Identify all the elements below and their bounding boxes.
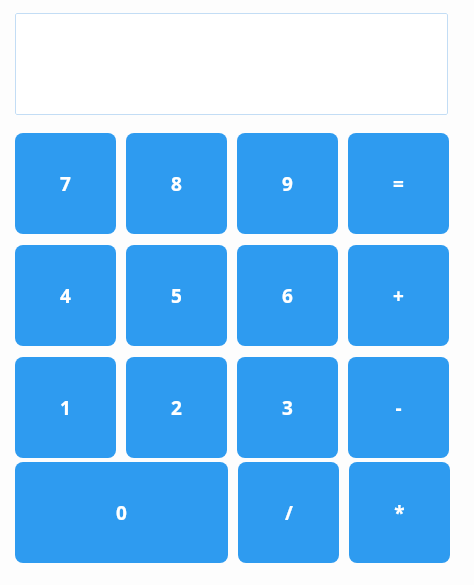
staticText: * bbox=[394, 500, 405, 526]
staticText: 6 bbox=[282, 283, 293, 309]
staticText: 7 bbox=[60, 171, 71, 197]
staticText: 1 bbox=[60, 395, 71, 421]
button[interactable] bbox=[15, 13, 448, 115]
button[interactable]: 6 bbox=[237, 245, 338, 346]
button[interactable]: 0 bbox=[15, 462, 228, 563]
button[interactable]: 1 bbox=[15, 357, 116, 458]
button[interactable]: 7 bbox=[15, 133, 116, 234]
button[interactable]: 4 bbox=[15, 245, 116, 346]
button[interactable]: = bbox=[348, 133, 449, 234]
staticText: / bbox=[285, 500, 293, 526]
staticText: - bbox=[395, 395, 402, 421]
staticText: 5 bbox=[171, 283, 182, 309]
staticText: 0 bbox=[116, 500, 127, 526]
button[interactable]: 5 bbox=[126, 245, 227, 346]
button[interactable]: 9 bbox=[237, 133, 338, 234]
staticText: = bbox=[393, 171, 404, 197]
staticText: 9 bbox=[282, 171, 293, 197]
staticText: 2 bbox=[171, 395, 182, 421]
button[interactable]: 8 bbox=[126, 133, 227, 234]
button[interactable]: * bbox=[349, 462, 450, 563]
button[interactable]: / bbox=[238, 462, 339, 563]
staticText: 4 bbox=[60, 283, 71, 309]
button[interactable]: - bbox=[348, 357, 449, 458]
button[interactable]: + bbox=[348, 245, 449, 346]
staticText: 8 bbox=[171, 171, 182, 197]
staticText: + bbox=[393, 283, 404, 309]
staticText: 3 bbox=[282, 395, 293, 421]
button[interactable]: 3 bbox=[237, 357, 338, 458]
button[interactable]: 2 bbox=[126, 357, 227, 458]
